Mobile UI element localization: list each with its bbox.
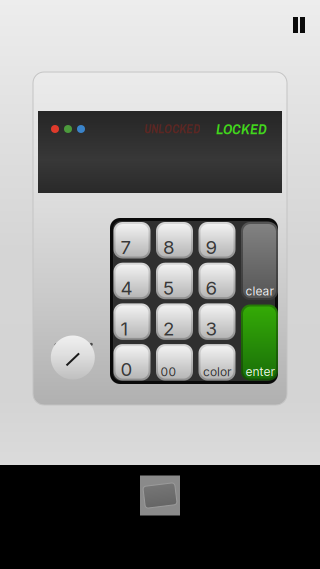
staticText: 00	[160, 365, 176, 379]
button[interactable]: 4	[113, 263, 150, 299]
button[interactable]: 2	[156, 303, 193, 340]
staticText: 8	[163, 236, 175, 258]
button[interactable]: 00	[156, 344, 193, 381]
button[interactable]: 1	[113, 303, 150, 340]
staticText: 5	[163, 277, 174, 299]
staticText: 2	[163, 317, 174, 340]
staticText: 9	[205, 236, 217, 258]
staticText: enter	[245, 364, 275, 379]
button[interactable]: 3	[198, 303, 235, 340]
staticText: UNLOCKED	[144, 121, 200, 137]
staticText: 4	[120, 277, 132, 299]
button[interactable]: 5	[156, 263, 193, 299]
staticText: color	[203, 365, 232, 379]
staticText: 3	[205, 317, 217, 340]
staticText: clear	[245, 284, 274, 298]
button[interactable]: clear	[241, 222, 278, 300]
button[interactable]: 8	[156, 222, 193, 258]
staticText: LOCKED	[216, 119, 267, 139]
button[interactable]: color	[198, 344, 235, 381]
staticText: 7	[120, 236, 131, 258]
staticText: 6	[205, 277, 217, 299]
button[interactable]: enter	[241, 304, 278, 380]
staticText: 1	[120, 317, 128, 340]
staticText: 0	[120, 358, 132, 381]
button[interactable]: 7	[113, 222, 150, 258]
button[interactable]: 6	[198, 263, 235, 299]
button[interactable]: 0	[113, 344, 150, 381]
button[interactable]: Pause	[284, 10, 314, 40]
button[interactable]: 9	[198, 222, 235, 258]
